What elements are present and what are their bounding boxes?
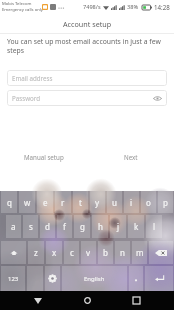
- staticText: English: [84, 275, 105, 283]
- staticText: a: [11, 221, 16, 232]
- button[interactable]: v: [81, 241, 96, 264]
- other: Shift: [9, 248, 19, 258]
- button[interactable]: Email address: [7, 70, 167, 86]
- staticText: Account setup: [63, 19, 112, 29]
- staticText: r: [61, 197, 65, 208]
- button[interactable]: Manual setup: [0, 148, 87, 165]
- button[interactable]: Enter: [145, 266, 173, 291]
- staticText: p: [163, 197, 168, 208]
- button[interactable]: a: [6, 215, 21, 238]
- other: Show password: [153, 94, 162, 103]
- button[interactable]: Password: [7, 90, 167, 106]
- button[interactable]: 123: [1, 266, 25, 291]
- staticText: Password: [12, 94, 40, 102]
- button[interactable]: Settings: [45, 266, 60, 291]
- button[interactable]: Backspace: [149, 241, 173, 264]
- staticText: i: [130, 197, 133, 208]
- other: Settings: [48, 274, 57, 283]
- staticText: o: [146, 197, 151, 208]
- button[interactable]: w: [19, 191, 35, 213]
- button[interactable]: [27, 266, 43, 291]
- staticText: Mobis Telecom: [2, 1, 32, 7]
- button[interactable]: n: [115, 241, 130, 264]
- staticText: s: [29, 221, 33, 232]
- staticText: q: [7, 197, 12, 208]
- staticText: y: [95, 197, 100, 208]
- staticText: j: [117, 221, 120, 232]
- button[interactable]: g: [74, 215, 90, 238]
- button[interactable]: Recents: [125, 291, 147, 310]
- button[interactable]: Back: [27, 291, 49, 310]
- button[interactable]: r: [55, 191, 71, 213]
- other: Period: [133, 276, 139, 282]
- staticText: n: [120, 247, 125, 258]
- other: Enter: [154, 273, 165, 284]
- staticText: w: [24, 197, 31, 208]
- staticText: t: [79, 197, 82, 208]
- button[interactable]: s: [23, 215, 38, 238]
- staticText: c: [70, 247, 74, 258]
- button[interactable]: Shift: [1, 241, 26, 264]
- staticText: l: [153, 221, 156, 232]
- staticText: m: [136, 247, 144, 258]
- staticText: v: [86, 247, 91, 258]
- button[interactable]: i: [124, 191, 139, 213]
- staticText: Email address: [12, 74, 53, 82]
- button[interactable]: x: [46, 241, 62, 264]
- staticText: You can set up most email accounts in ju…: [7, 37, 166, 55]
- button[interactable]: t: [73, 191, 88, 213]
- staticText: 7498/s: [83, 3, 101, 11]
- button[interactable]: e: [37, 191, 53, 213]
- staticText: b: [103, 247, 108, 258]
- button[interactable]: Next: [87, 148, 174, 165]
- button[interactable]: y: [90, 191, 105, 213]
- button[interactable]: h: [92, 215, 108, 238]
- staticText: h: [98, 221, 103, 232]
- button[interactable]: l: [146, 215, 162, 238]
- button[interactable]: Period: [129, 266, 143, 291]
- button[interactable]: d: [40, 215, 55, 238]
- staticText: z: [34, 247, 38, 258]
- staticText: Manual setup: [24, 153, 64, 161]
- staticText: k: [134, 221, 139, 232]
- staticText: x: [52, 247, 57, 258]
- button[interactable]: z: [28, 241, 44, 264]
- button[interactable]: f: [57, 215, 72, 238]
- button[interactable]: c: [64, 241, 79, 264]
- button[interactable]: u: [107, 191, 122, 213]
- button[interactable]: o: [141, 191, 156, 213]
- button[interactable]: j: [110, 215, 126, 238]
- staticText: 38%: [127, 3, 139, 11]
- staticText: Emergency calls only: [2, 7, 44, 13]
- staticText: u: [112, 197, 117, 208]
- button[interactable]: b: [98, 241, 113, 264]
- staticText: e: [43, 197, 48, 208]
- button[interactable]: English: [62, 266, 127, 291]
- staticText: 123: [8, 275, 19, 283]
- other: Backspace: [155, 249, 167, 257]
- staticText: g: [80, 221, 85, 232]
- staticText: Next: [124, 153, 138, 161]
- button[interactable]: k: [128, 215, 144, 238]
- staticText: f: [63, 221, 66, 232]
- button[interactable]: Home: [76, 291, 98, 310]
- button[interactable]: p: [158, 191, 173, 213]
- button[interactable]: m: [132, 241, 147, 264]
- staticText: d: [45, 221, 50, 232]
- staticText: 14:28: [154, 3, 170, 11]
- button[interactable]: q: [1, 191, 17, 213]
